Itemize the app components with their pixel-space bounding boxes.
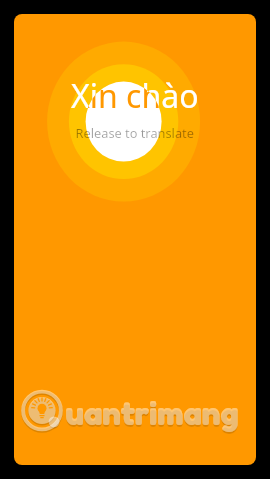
button[interactable]: Release to translate xyxy=(14,14,256,465)
